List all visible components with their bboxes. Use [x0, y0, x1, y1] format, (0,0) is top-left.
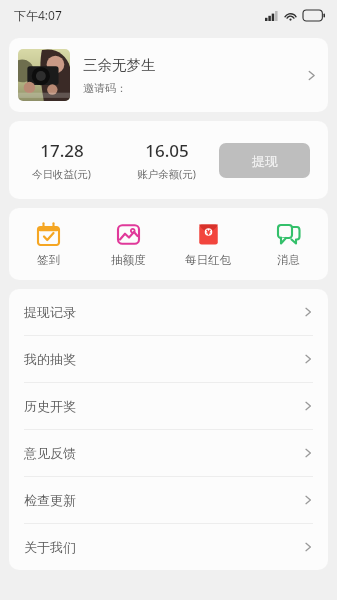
other: 每日红包 — [196, 222, 221, 247]
staticText: 今日收益(元) — [32, 167, 91, 181]
other: 签到 — [36, 222, 61, 247]
button[interactable]: 历史开奖 — [9, 383, 328, 429]
other: 消息 — [276, 222, 301, 247]
button[interactable]: 我的抽奖 — [9, 336, 328, 382]
staticText: 17.28 — [40, 139, 84, 162]
staticText: 签到 — [37, 253, 60, 267]
button[interactable]: 17.28 — [9, 139, 114, 181]
button[interactable]: 抽额度 — [88, 208, 168, 280]
staticText: 下午4:07 — [14, 7, 62, 23]
staticText: 意见反馈 — [24, 445, 303, 461]
button[interactable]: 意见反馈 — [9, 430, 328, 476]
staticText: 我的抽奖 — [24, 351, 303, 367]
staticText: 16.05 — [145, 139, 189, 162]
staticText: 检查更新 — [24, 492, 303, 508]
button[interactable]: 提现 — [219, 143, 310, 178]
staticText: 提现记录 — [24, 304, 303, 320]
button[interactable]: 签到 — [9, 208, 88, 280]
staticText: 抽额度 — [111, 253, 146, 267]
staticText: 提现 — [252, 153, 278, 169]
staticText: 关于我们 — [24, 539, 303, 555]
button[interactable]: 三余无梦生 — [9, 38, 328, 112]
button[interactable]: 提现记录 — [9, 289, 328, 335]
staticText: 邀请码： — [83, 81, 127, 95]
staticText: 消息 — [277, 253, 300, 267]
staticText: 历史开奖 — [24, 398, 303, 414]
button[interactable]: 消息 — [248, 208, 328, 280]
button[interactable]: 关于我们 — [9, 524, 328, 570]
button[interactable]: 检查更新 — [9, 477, 328, 523]
button[interactable]: 每日红包 — [168, 208, 248, 280]
staticText: 账户余额(元) — [137, 167, 196, 181]
other: 抽额度 — [116, 222, 141, 247]
staticText: 每日红包 — [185, 253, 231, 267]
staticText: 三余无梦生 — [83, 56, 156, 74]
button[interactable]: 16.05 — [114, 139, 219, 181]
